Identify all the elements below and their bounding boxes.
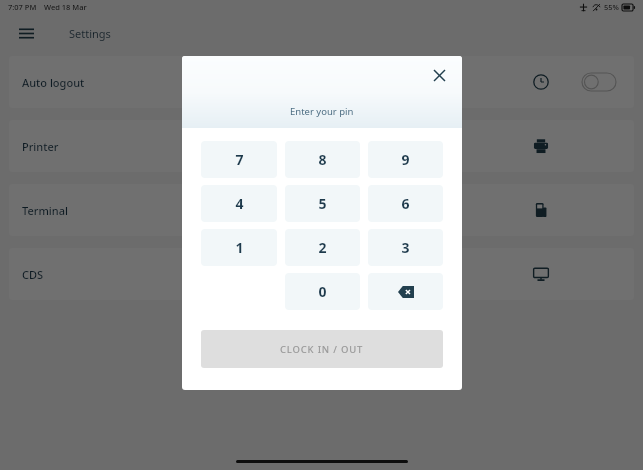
- button[interactable]: CDS: [9, 248, 634, 300]
- staticText: 9: [401, 150, 410, 169]
- staticText: 7: [235, 150, 244, 169]
- button[interactable]: Menu: [12, 19, 40, 47]
- staticText: CDS: [22, 267, 44, 282]
- staticText: Terminal: [22, 203, 68, 218]
- button[interactable]: 1: [201, 229, 277, 266]
- staticText: CLOCK IN / OUT: [280, 343, 364, 356]
- button[interactable]: 9: [368, 141, 443, 178]
- button[interactable]: 7: [201, 141, 277, 178]
- staticText: 6: [401, 194, 410, 213]
- button[interactable]: 8: [285, 141, 360, 178]
- staticText: Settings: [69, 26, 111, 41]
- staticText: 7:07 PM: [8, 2, 37, 12]
- button[interactable]: Auto logout: [9, 56, 634, 108]
- button[interactable]: Terminal: [9, 184, 634, 236]
- staticText: 5: [318, 194, 327, 213]
- staticText: Printer: [22, 139, 59, 154]
- staticText: 0: [318, 282, 327, 301]
- button[interactable]: 3: [368, 229, 443, 266]
- button[interactable]: 5: [285, 185, 360, 222]
- button[interactable]: 4: [201, 185, 277, 222]
- button[interactable]: Auto logout toggle: [582, 73, 616, 91]
- staticText: 55%: [604, 2, 619, 12]
- staticText: Enter your pin: [290, 105, 354, 118]
- staticText: 4: [235, 194, 244, 213]
- staticText: 3: [401, 238, 410, 257]
- button[interactable]: CLOCK IN / OUT: [201, 330, 443, 368]
- button[interactable]: Close: [426, 62, 452, 88]
- button[interactable]: 2: [285, 229, 360, 266]
- staticText: 8: [318, 150, 327, 169]
- button[interactable]: 6: [368, 185, 443, 222]
- staticText: 2: [318, 238, 327, 257]
- staticText: Wed 18 Mar: [44, 2, 87, 12]
- staticText: Auto logout: [22, 75, 85, 90]
- button[interactable]: 0: [285, 273, 360, 310]
- button[interactable]: Backspace: [368, 273, 443, 310]
- button[interactable]: Printer: [9, 120, 634, 172]
- staticText: 1: [235, 238, 244, 257]
